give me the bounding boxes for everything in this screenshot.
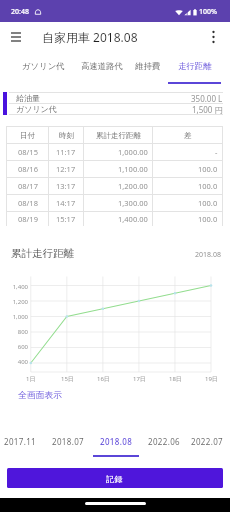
staticText: 日付 <box>20 131 35 140</box>
button[interactable]: 記録 <box>7 468 223 488</box>
staticText: ガソリン代 <box>16 104 57 114</box>
staticText: 08/15 <box>18 147 38 157</box>
staticText: 走行距離 <box>178 61 212 72</box>
button[interactable]: 2022.06 <box>140 432 188 458</box>
staticText: 記録 <box>106 474 124 484</box>
staticText: 1,000 <box>0 313 28 321</box>
staticText: 100.0 <box>198 214 218 224</box>
staticText: 1,500 円 <box>192 104 223 114</box>
staticText: 1,400.00 <box>118 214 148 224</box>
staticText: 800 <box>0 328 28 336</box>
staticText: 1,400 <box>0 283 28 291</box>
staticText: 16日 <box>97 375 110 383</box>
staticText: 19日 <box>205 375 218 383</box>
staticText: 14:17 <box>56 198 76 208</box>
staticText: 高速道路代 <box>81 61 123 72</box>
staticText: 給油量 <box>16 93 40 103</box>
button[interactable]: 2017.11 <box>0 432 44 458</box>
staticText: - <box>215 147 218 157</box>
staticText: 1,200.00 <box>118 181 148 191</box>
staticText: 08/18 <box>18 198 38 208</box>
staticText: 18日 <box>169 375 182 383</box>
staticText: 08/19 <box>18 214 38 224</box>
staticText: 100% <box>199 7 217 17</box>
staticText: 13:17 <box>56 181 76 191</box>
staticText: 2022.06 <box>148 436 181 447</box>
staticText: 1,300.00 <box>118 198 148 208</box>
button[interactable]: ガソリン代 <box>11 52 76 85</box>
staticText: 17日 <box>133 375 146 383</box>
button[interactable]: 2018.08 <box>92 432 140 458</box>
staticText: 1,200 <box>0 298 28 306</box>
button[interactable]: 2022.07 <box>188 432 226 458</box>
staticText: 08/16 <box>18 164 38 174</box>
staticText: 2017.11 <box>4 436 37 447</box>
staticText: 100.0 <box>198 181 218 191</box>
staticText: 600 <box>0 343 28 351</box>
staticText: 2022.07 <box>191 436 224 447</box>
button[interactable]: More options <box>202 26 224 48</box>
button[interactable]: 2018.07 <box>44 432 92 458</box>
staticText: 20:48 <box>11 7 29 17</box>
staticText: 1,100.00 <box>118 164 148 174</box>
staticText: 2018.08 <box>195 250 221 260</box>
staticText: 08/17 <box>18 181 38 191</box>
staticText: 100.0 <box>198 198 218 208</box>
staticText: 1,000.00 <box>118 147 148 157</box>
staticText: 1日 <box>26 375 36 383</box>
staticText: ガソリン代 <box>22 61 65 72</box>
staticText: 15日 <box>61 375 74 383</box>
staticText: 自家用車 2018.08 <box>42 29 138 45</box>
staticText: 2018.07 <box>52 436 85 447</box>
button[interactable]: 走行距離 <box>168 52 221 85</box>
staticText: 維持費 <box>135 61 161 72</box>
staticText: 12:17 <box>56 164 76 174</box>
staticText: 差 <box>184 131 192 140</box>
staticText: 350.00 L <box>191 93 223 103</box>
staticText: 累計走行距離 <box>96 131 141 140</box>
staticText: 累計走行距離 <box>11 247 74 260</box>
staticText: 時刻 <box>59 131 74 140</box>
button[interactable]: Menu <box>4 25 28 49</box>
button[interactable]: 維持費 <box>127 52 168 85</box>
staticText: 100.0 <box>198 164 218 174</box>
button[interactable]: 全画面表示 <box>14 390 66 401</box>
staticText: 11:17 <box>56 147 76 157</box>
staticText: 15:17 <box>56 214 76 224</box>
staticText: 2018.08 <box>100 436 133 447</box>
button[interactable]: 高速道路代 <box>76 52 127 85</box>
staticText: 400 <box>0 358 28 366</box>
